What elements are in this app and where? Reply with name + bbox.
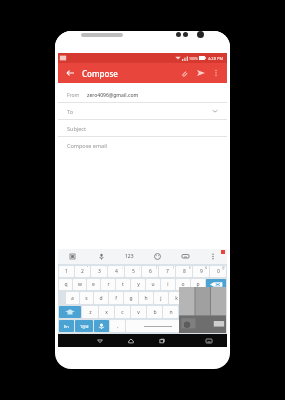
button[interactable]: Back <box>84 334 115 347</box>
button[interactable]: 0 <box>210 266 226 277</box>
button[interactable]: v <box>131 306 146 318</box>
button[interactable]: g <box>124 292 138 304</box>
button[interactable]: 123 <box>115 249 143 264</box>
button[interactable]: ? <box>211 306 226 318</box>
button[interactable]: 7 <box>159 266 175 277</box>
staticText: Compose <box>82 68 118 79</box>
button[interactable]: k <box>169 292 183 304</box>
button[interactable]: To <box>58 103 227 119</box>
button[interactable]: n <box>163 306 178 318</box>
button[interactable]: 6 <box>142 266 158 277</box>
button[interactable]: Back <box>63 66 77 80</box>
button[interactable]: 8 <box>176 266 192 277</box>
button[interactable]: h <box>139 292 153 304</box>
button[interactable]: z <box>82 306 98 318</box>
button[interactable]: s <box>80 292 93 304</box>
staticText: ? <box>217 309 220 316</box>
button[interactable]: Menu <box>199 249 227 264</box>
staticText: From <box>67 92 80 99</box>
staticText: 4 <box>115 268 118 275</box>
staticText: " <box>87 266 89 270</box>
staticText: w <box>78 281 82 288</box>
staticText: m <box>184 309 189 316</box>
staticText: i <box>167 281 169 288</box>
staticText: & <box>205 266 208 270</box>
button[interactable]: Compose email <box>58 137 227 249</box>
button[interactable]: 1@# <box>75 320 93 332</box>
staticText: f <box>115 295 117 302</box>
button[interactable]: u <box>146 279 160 290</box>
staticText: h <box>144 295 148 302</box>
staticText: Done <box>207 295 219 301</box>
button[interactable]: . <box>190 320 205 332</box>
staticText: To <box>67 108 74 115</box>
staticText: En <box>64 324 69 329</box>
staticText: a <box>71 295 74 302</box>
staticText: c <box>121 309 124 316</box>
staticText: t <box>122 281 124 288</box>
button[interactable]: 2 <box>75 266 90 277</box>
button[interactable]: Switch keyboard <box>196 334 221 347</box>
button[interactable] <box>126 320 189 332</box>
staticText: 8 <box>183 268 186 275</box>
button[interactable]: p <box>191 279 205 290</box>
button[interactable]: , <box>110 320 125 332</box>
staticText: : <box>122 266 123 270</box>
button[interactable]: j <box>154 292 168 304</box>
staticText: z <box>89 309 92 316</box>
button[interactable]: t <box>116 279 130 290</box>
button[interactable]: More options <box>210 67 222 79</box>
button[interactable]: f <box>109 292 123 304</box>
staticText: v <box>137 309 140 316</box>
button[interactable]: r <box>101 279 115 290</box>
staticText: Compose email <box>67 142 107 149</box>
button[interactable]: Recent apps <box>146 334 177 347</box>
button[interactable]: 3 <box>91 266 107 277</box>
staticText: y <box>137 281 140 288</box>
button[interactable]: 1 <box>59 266 74 277</box>
button[interactable]: ▲ <box>206 320 226 332</box>
staticText: ( <box>156 266 157 270</box>
button[interactable]: x <box>99 306 114 318</box>
button[interactable]: e <box>87 279 100 290</box>
staticText: 1@# <box>80 324 89 329</box>
button[interactable]: Keyboard settings <box>171 249 199 264</box>
button[interactable]: Subject <box>58 120 227 136</box>
button[interactable]: y <box>131 279 145 290</box>
staticText: , <box>117 323 119 330</box>
staticText: e <box>92 281 95 288</box>
button[interactable]: Emoji <box>143 249 171 264</box>
button[interactable]: Voice input <box>87 249 115 264</box>
button[interactable]: 5 <box>125 266 141 277</box>
button[interactable]: d <box>94 292 108 304</box>
button[interactable]: w <box>73 279 86 290</box>
button[interactable]: Shift <box>59 306 81 318</box>
staticText: p <box>196 281 200 288</box>
button[interactable]: o <box>176 279 190 290</box>
button[interactable]: q <box>59 279 72 290</box>
button[interactable]: Voice typing <box>94 320 109 332</box>
button[interactable]: Attach file <box>177 66 191 80</box>
button[interactable]: i <box>161 279 175 290</box>
staticText: 2 <box>81 268 84 275</box>
button[interactable]: Backspace <box>206 279 226 290</box>
staticText: r <box>107 281 110 288</box>
staticText: 9 <box>200 268 203 275</box>
button[interactable]: m <box>179 306 194 318</box>
button[interactable]: b <box>147 306 162 318</box>
button[interactable]: Send <box>194 66 208 80</box>
button[interactable]: 9 <box>193 266 209 277</box>
staticText: ' <box>105 266 106 270</box>
button[interactable]: From <box>58 88 227 102</box>
button[interactable]: a <box>66 292 79 304</box>
button[interactable]: Home <box>115 334 146 347</box>
button[interactable]: Done <box>199 292 226 304</box>
button[interactable]: l <box>184 292 198 304</box>
button[interactable]: En <box>59 320 74 332</box>
button[interactable]: Clipboard <box>58 249 87 264</box>
button[interactable]: ! <box>195 306 210 318</box>
button[interactable]: 4 <box>108 266 124 277</box>
button[interactable]: c <box>115 306 130 318</box>
staticText: $ <box>189 266 191 270</box>
